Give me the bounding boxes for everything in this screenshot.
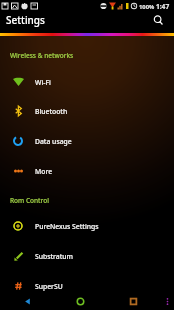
button[interactable]: More options <box>160 292 174 310</box>
staticText: PureNexus Settings <box>35 222 99 231</box>
button[interactable]: Search <box>149 11 167 29</box>
button[interactable]: Bluetooth <box>0 97 174 125</box>
staticText: Wi-Fi <box>35 78 51 87</box>
staticText: Wireless & networks <box>10 51 74 60</box>
staticText: SuperSU <box>35 282 63 291</box>
staticText: More <box>35 167 53 176</box>
button[interactable]: SuperSU <box>0 272 174 300</box>
button[interactable]: Back <box>0 292 54 310</box>
button[interactable]: Wi-Fi <box>0 68 174 96</box>
button[interactable]: PureNexus Settings <box>0 212 174 240</box>
staticText: Substratum <box>35 252 74 261</box>
button[interactable]: Data usage <box>0 127 174 155</box>
staticText: Rom Control <box>10 196 49 205</box>
staticText: Bluetooth <box>35 107 68 116</box>
button[interactable]: Home <box>54 292 107 310</box>
staticText: Settings <box>6 13 45 27</box>
staticText: Data usage <box>35 137 72 146</box>
button[interactable]: Substratum <box>0 242 174 270</box>
staticText: 100% <box>139 3 155 11</box>
button[interactable]: Recent apps <box>107 292 160 310</box>
staticText: 1:47 <box>156 2 170 11</box>
button[interactable]: More <box>0 157 174 185</box>
